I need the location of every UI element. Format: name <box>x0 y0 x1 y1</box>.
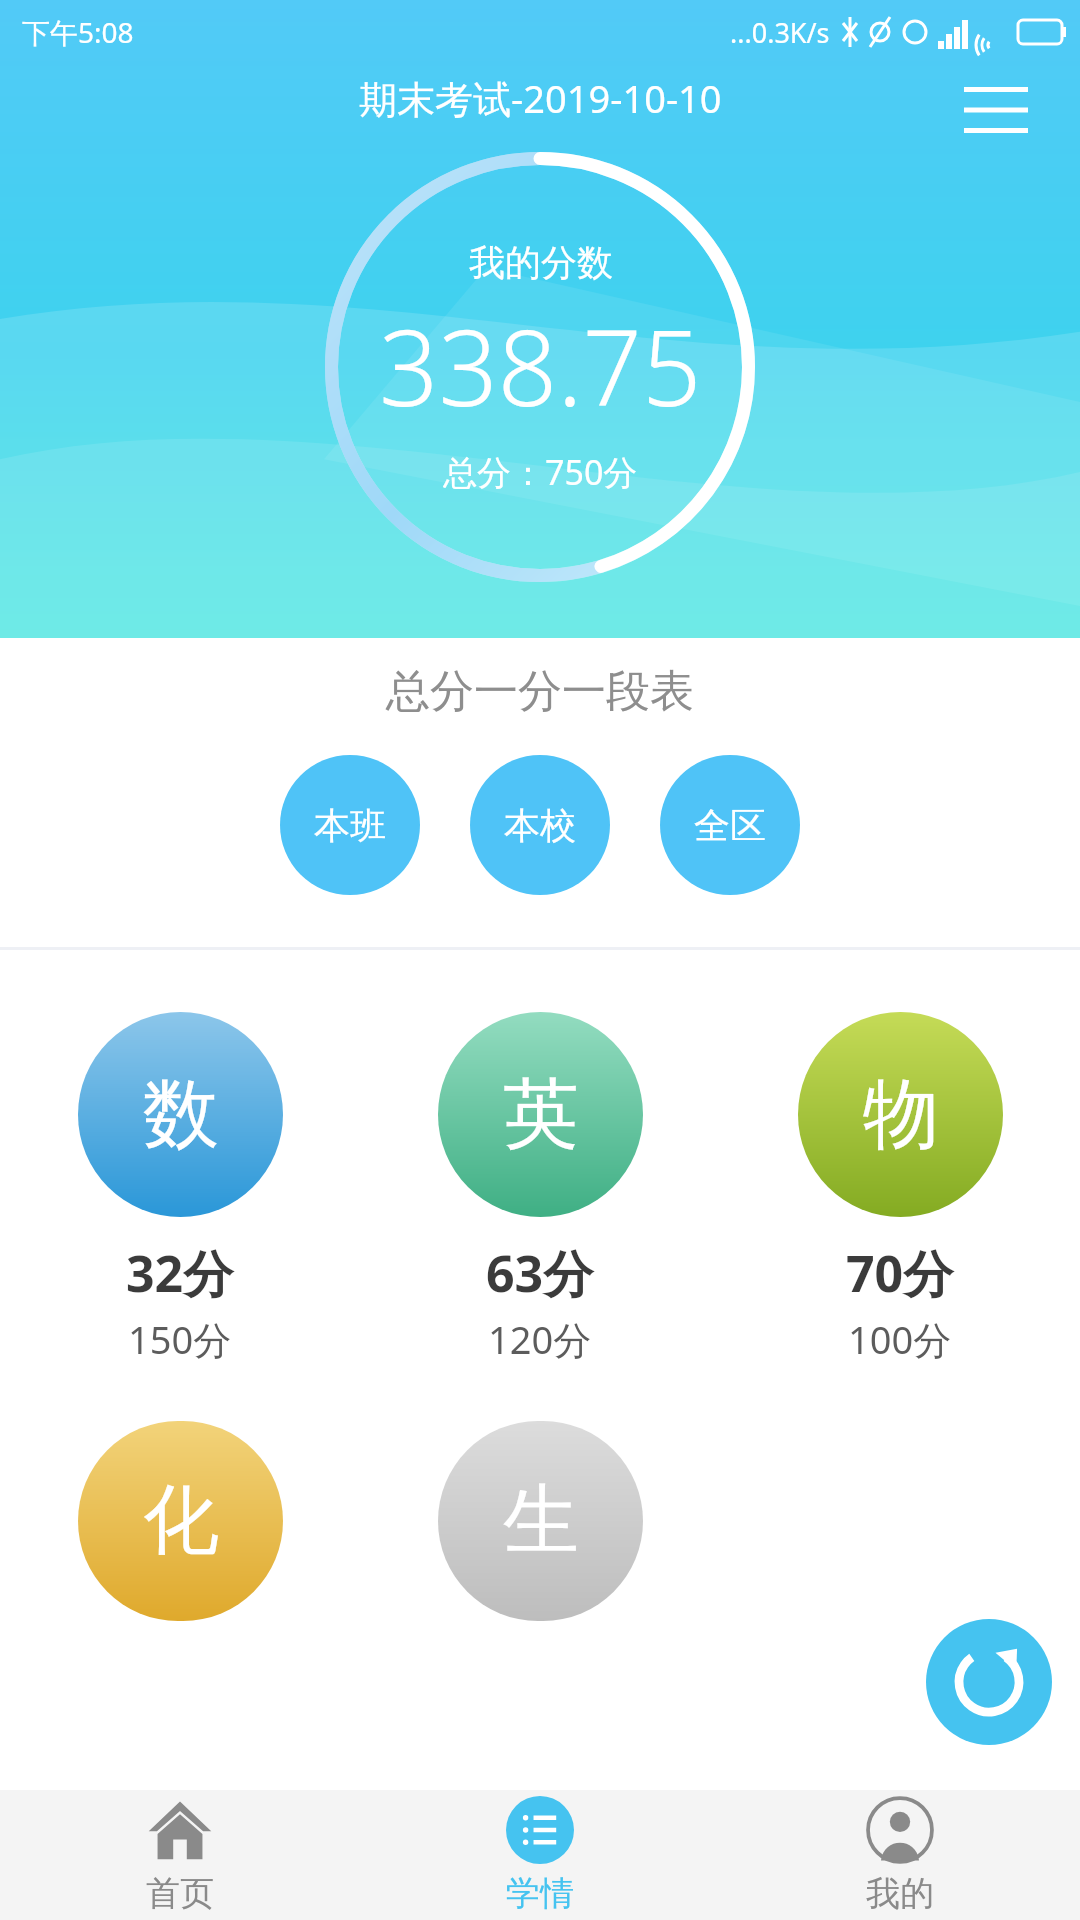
button[interactable]: 英 <box>360 1012 720 1365</box>
staticText: ...0.3K/s <box>730 14 830 51</box>
button[interactable]: 数 <box>0 1012 360 1365</box>
staticText: 物 <box>863 1067 939 1163</box>
button[interactable]: 本校 <box>470 755 610 895</box>
staticText: 英 <box>503 1067 579 1163</box>
staticText: 150分 <box>128 1313 232 1365</box>
staticText: 全区 <box>694 803 766 848</box>
staticText: 学情 <box>506 1872 574 1915</box>
staticText: 70分 <box>846 1239 954 1307</box>
staticText: 我的分数 <box>469 240 613 285</box>
button[interactable]: 本班 <box>280 755 420 895</box>
staticText: 生 <box>503 1473 579 1569</box>
button[interactable]: 学情 <box>360 1790 720 1920</box>
staticText: 化 <box>143 1473 219 1569</box>
button[interactable]: 首页 <box>0 1790 360 1920</box>
button[interactable]: 全区 <box>660 755 800 895</box>
staticText: 我的 <box>866 1872 934 1915</box>
staticText: 数 <box>143 1067 219 1163</box>
button[interactable]: 物 <box>720 1012 1080 1365</box>
button[interactable]: 化 <box>78 1421 283 1621</box>
button[interactable]: Refresh <box>926 1619 1052 1745</box>
staticText: 32分 <box>126 1239 234 1307</box>
staticText: 100分 <box>848 1313 952 1365</box>
staticText: 本校 <box>504 803 576 848</box>
button[interactable]: Menu <box>948 62 1044 158</box>
staticText: 期末考试-2019-10-10 <box>359 72 722 124</box>
staticText: 120分 <box>488 1313 592 1365</box>
button[interactable]: 我的 <box>720 1790 1080 1920</box>
staticText: 总分一分一段表 <box>386 664 694 719</box>
staticText: 总分：750分 <box>443 449 638 495</box>
staticText: 本班 <box>314 803 386 848</box>
staticText: 首页 <box>146 1872 214 1915</box>
button[interactable]: 生 <box>438 1421 643 1621</box>
staticText: 下午5:08 <box>22 13 134 51</box>
staticText: 338.75 <box>379 295 702 437</box>
staticText: 63分 <box>486 1239 594 1307</box>
